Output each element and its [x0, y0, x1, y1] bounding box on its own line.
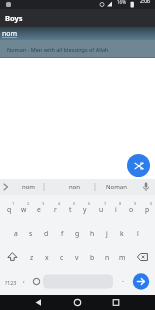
staticText: g [75, 229, 80, 238]
staticText: a [14, 229, 18, 238]
staticText: Noman - Men with all blessings of Allah [7, 46, 109, 53]
staticText: d [44, 229, 49, 238]
staticText: , [23, 275, 25, 285]
staticText: 3 [42, 201, 45, 206]
button[interactable] [67, 295, 87, 310]
staticText: w [21, 205, 27, 214]
staticText: u [99, 205, 104, 214]
staticText: r [54, 205, 57, 214]
staticText: 8 [119, 201, 122, 206]
staticText: y [83, 205, 87, 214]
button[interactable]: nom [0, 27, 155, 40]
staticText: m [119, 253, 126, 262]
staticText: Boys [5, 13, 23, 23]
staticText: 16% [117, 0, 126, 5]
staticText: s [29, 229, 33, 238]
staticText: ?123 [5, 279, 17, 286]
staticText: Noman [106, 183, 127, 191]
staticText: 5 [73, 201, 76, 206]
staticText: e [37, 205, 41, 214]
staticText: z [30, 253, 34, 262]
staticText: 2 [27, 201, 30, 206]
staticText: x [45, 253, 49, 262]
staticText: 0 [150, 201, 153, 206]
staticText: j [106, 229, 108, 238]
staticText: p [145, 205, 150, 214]
button[interactable] [127, 154, 150, 177]
staticText: 2:06 [140, 0, 150, 5]
staticText: f [61, 229, 64, 238]
staticText: i [115, 205, 117, 214]
staticText: o [129, 205, 134, 214]
staticText: q [7, 205, 12, 214]
button[interactable] [106, 295, 126, 310]
button[interactable] [28, 295, 48, 310]
staticText: v [75, 253, 79, 262]
staticText: t [69, 205, 72, 214]
staticText: nom [22, 183, 35, 191]
button[interactable]: Noman - Men with all blessings of Allah [0, 40, 155, 58]
staticText: n [105, 253, 110, 262]
staticText: 4 [58, 201, 61, 206]
staticText: nom [2, 29, 18, 39]
staticText: non [69, 183, 81, 191]
staticText: 7 [104, 201, 107, 206]
staticText: b [90, 253, 95, 262]
staticText: . [122, 275, 124, 285]
staticText: 6 [88, 201, 91, 206]
staticText: h [90, 229, 95, 238]
staticText: 9 [134, 201, 137, 206]
staticText: k [120, 229, 124, 238]
staticText: l [137, 229, 139, 238]
staticText: 1 [12, 201, 15, 206]
staticText: c [60, 253, 64, 262]
